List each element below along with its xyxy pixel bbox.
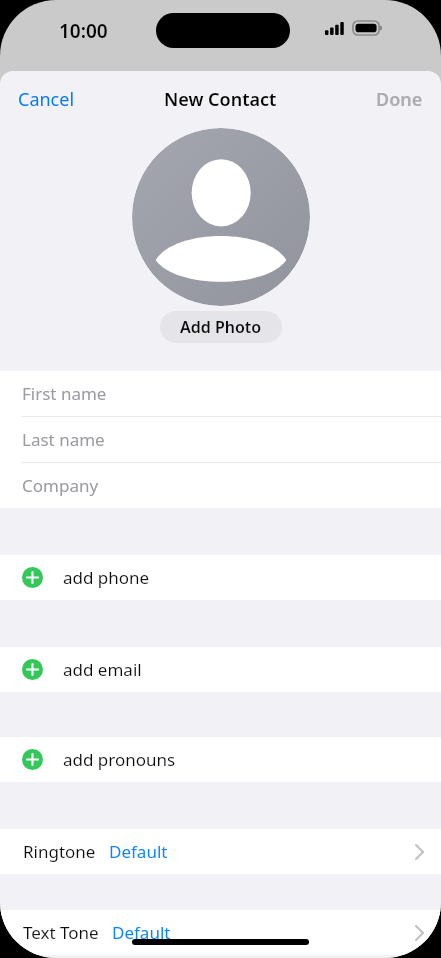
- button[interactable]: Last name: [0, 417, 441, 463]
- staticText: Default: [109, 840, 168, 863]
- button[interactable]: Done: [358, 77, 441, 122]
- button[interactable]: Add contact photo: [132, 128, 310, 306]
- button[interactable]: add phone: [0, 555, 441, 600]
- staticText: 10:00: [59, 18, 108, 44]
- staticText: Company: [22, 474, 99, 497]
- staticText: Add Photo: [180, 316, 262, 338]
- staticText: Done: [376, 87, 423, 112]
- staticText: Default: [112, 921, 171, 944]
- button[interactable]: Text Tone: [0, 910, 441, 955]
- staticText: First name: [22, 382, 107, 405]
- button[interactable]: add pronouns: [0, 737, 441, 782]
- staticText: Text Tone: [23, 921, 99, 944]
- button[interactable]: First name: [0, 371, 441, 417]
- staticText: Cancel: [18, 87, 75, 112]
- staticText: Ringtone: [23, 840, 96, 863]
- button[interactable]: add email: [0, 647, 441, 692]
- staticText: New Contact: [164, 87, 277, 112]
- staticText: Last name: [22, 428, 105, 451]
- staticText: add email: [63, 658, 142, 681]
- button[interactable]: Company: [0, 463, 441, 508]
- staticText: add phone: [63, 566, 150, 589]
- button[interactable]: Add Photo: [160, 311, 282, 343]
- button[interactable]: Cancel: [0, 77, 93, 122]
- button[interactable]: Ringtone: [0, 829, 441, 874]
- staticText: add pronouns: [63, 748, 176, 771]
